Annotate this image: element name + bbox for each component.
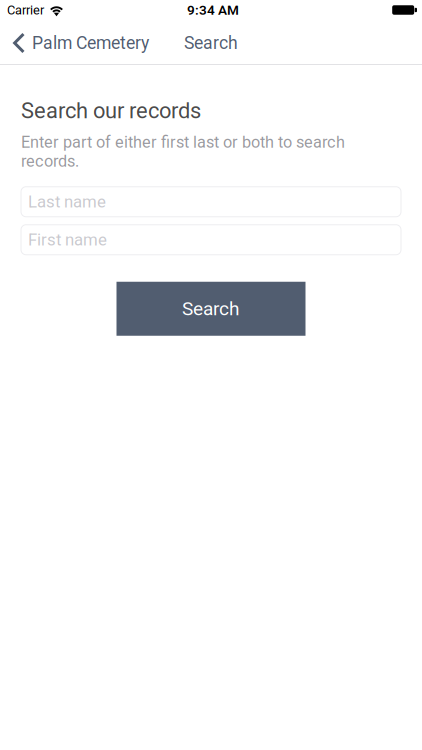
button[interactable]: Search	[116, 282, 305, 336]
staticText: 9:34 AM	[187, 2, 239, 18]
staticText: Search	[182, 298, 240, 320]
staticText: Palm Cemetery	[32, 33, 149, 53]
staticText: Carrier	[7, 2, 44, 17]
staticText: Last name	[28, 192, 106, 212]
staticText: Search	[184, 33, 238, 53]
button[interactable]: Last name	[21, 187, 401, 217]
button[interactable]: Palm Cemetery	[0, 25, 157, 59]
staticText: First name	[28, 230, 107, 250]
button[interactable]: First name	[21, 225, 401, 255]
staticText: Search our records	[21, 98, 201, 124]
staticText: Enter part of either first last or both …	[21, 133, 345, 171]
